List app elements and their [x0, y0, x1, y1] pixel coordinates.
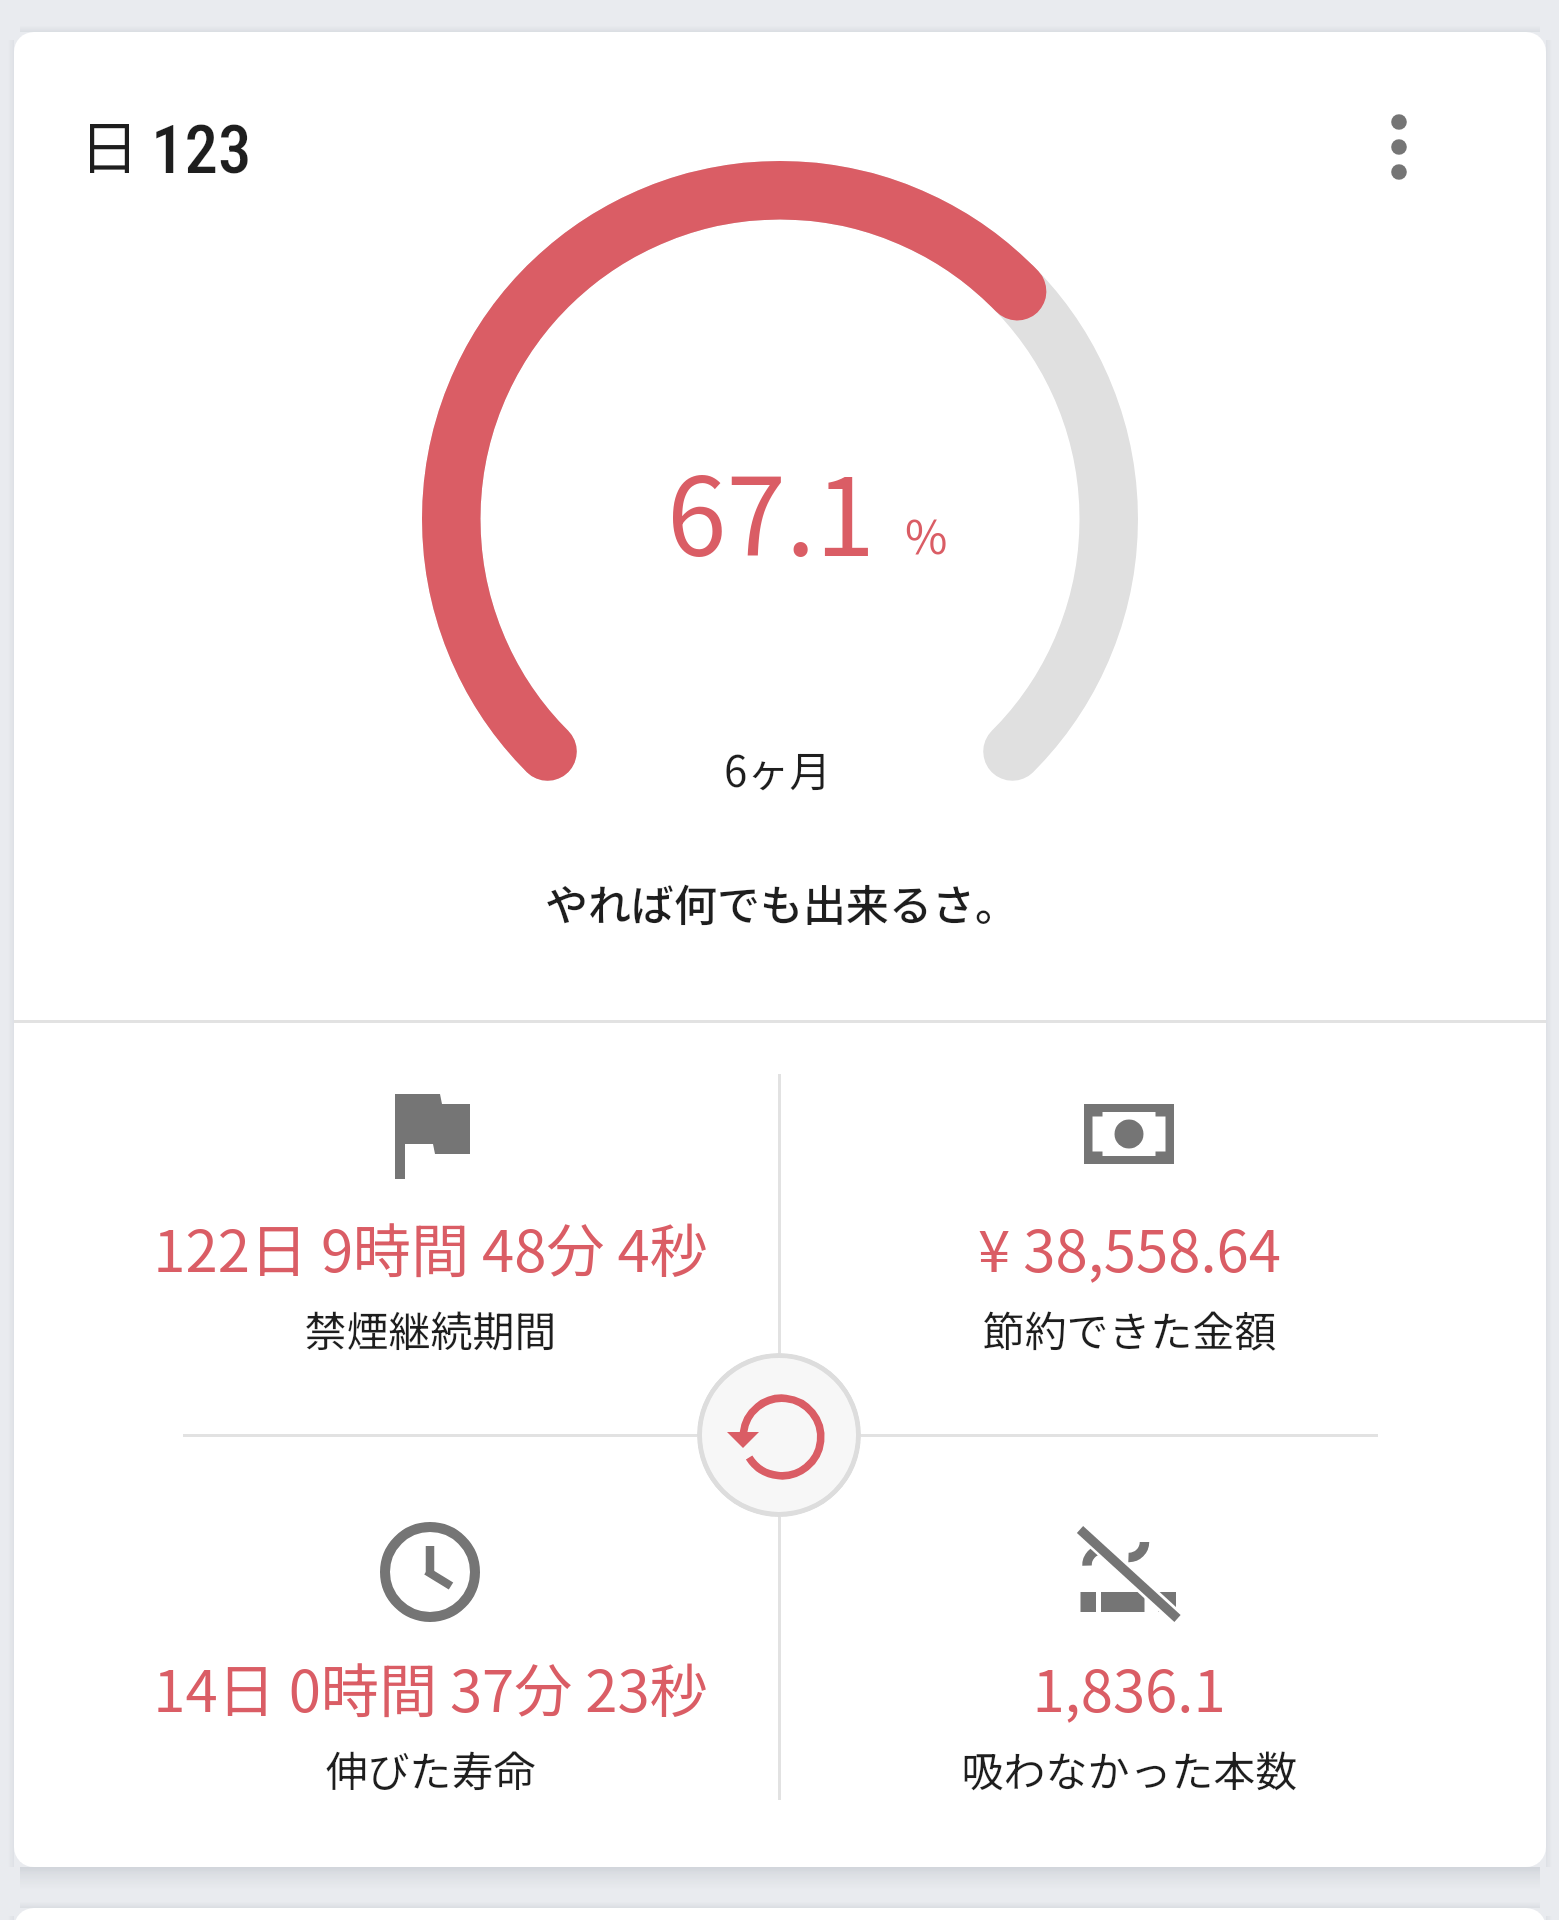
staticText: やれば何でも出来るさ。 [545, 871, 1018, 933]
staticText: 節約できた金額 [982, 1298, 1277, 1359]
staticText: 1,836.1 [1032, 1645, 1226, 1729]
staticText: 禁煙継続期間 [304, 1298, 557, 1359]
button[interactable]: More options [1344, 92, 1454, 202]
button[interactable] [781, 1437, 1546, 1867]
staticText: 123 [151, 111, 252, 190]
staticText: 伸びた寿命 [325, 1738, 536, 1799]
button[interactable] [781, 1023, 1546, 1434]
button[interactable] [14, 1437, 779, 1867]
button[interactable]: Reset [697, 1353, 861, 1517]
staticText: 吸わなかった本数 [961, 1738, 1298, 1799]
staticText: % [905, 501, 948, 568]
staticText: 67.1 [667, 432, 875, 587]
staticText: ¥ 38,558.64 [978, 1205, 1281, 1289]
staticText: 14日 0時間 37分 23秒 [153, 1645, 708, 1729]
staticText: 6ヶ月 [724, 738, 832, 799]
button[interactable] [14, 1023, 779, 1434]
staticText: 122日 9時間 48分 4秒 [153, 1205, 708, 1289]
button[interactable]: 123 [74, 104, 314, 184]
